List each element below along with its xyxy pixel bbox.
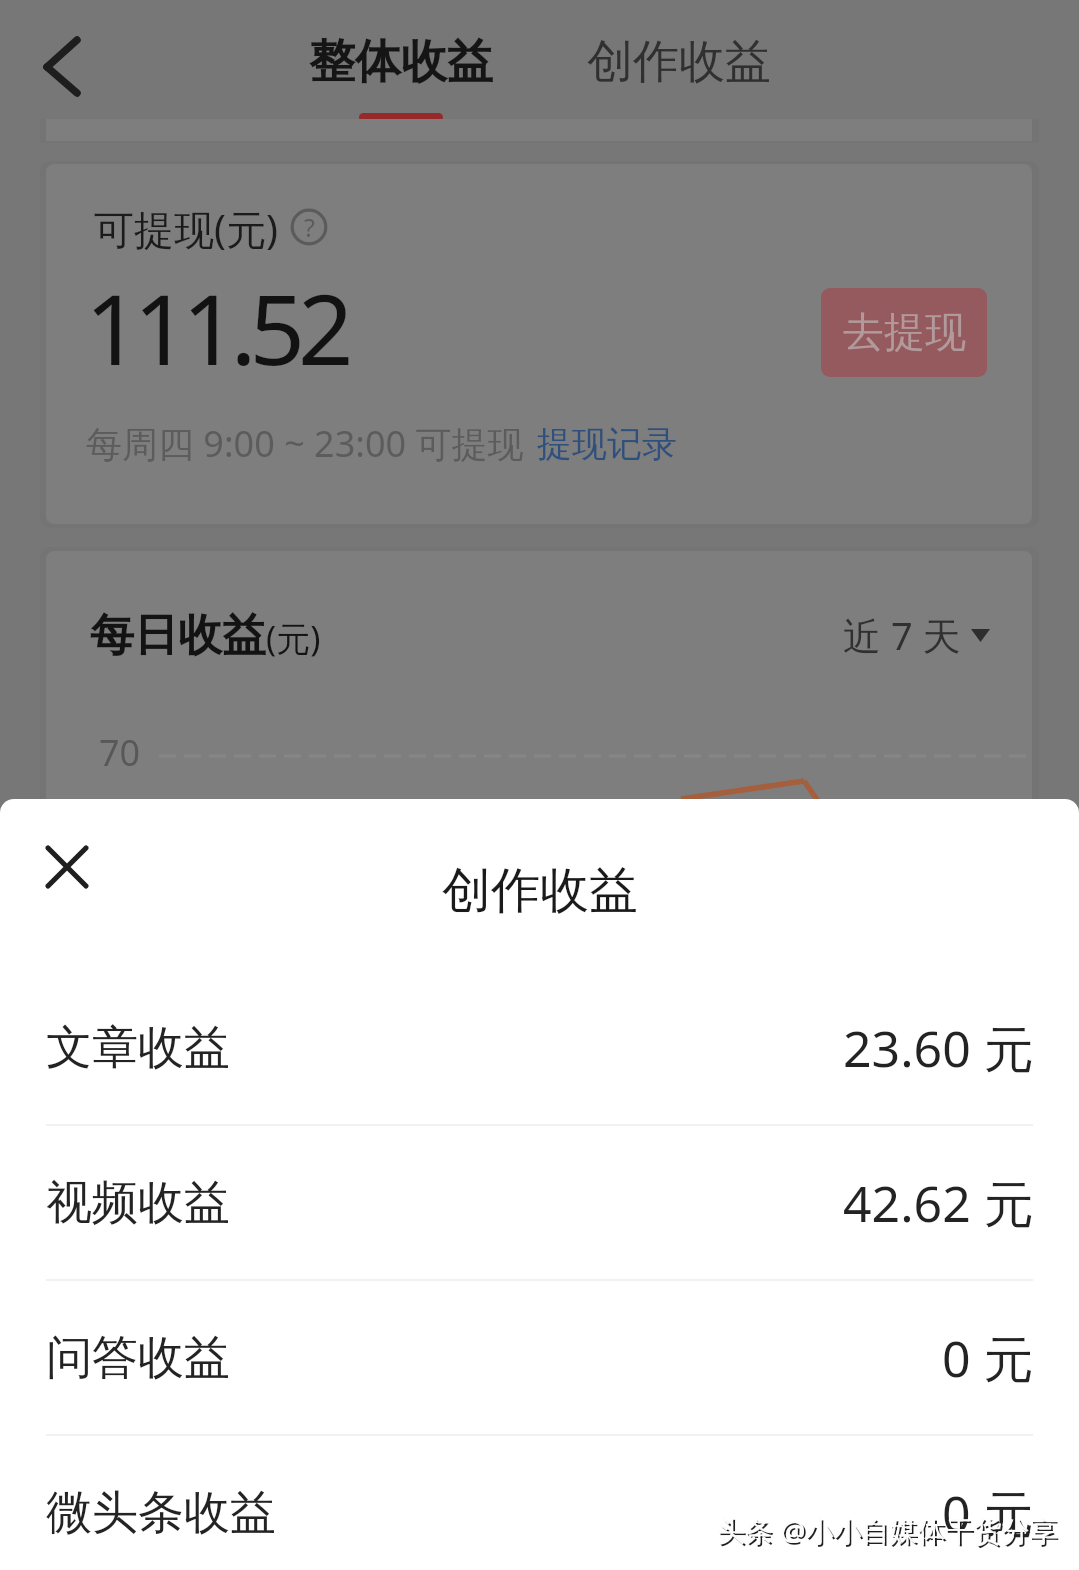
staticText: 0 元 bbox=[942, 1479, 1034, 1547]
staticText: 近 7 天 bbox=[843, 609, 961, 661]
button[interactable]: 文章收益 bbox=[0, 971, 1079, 1126]
button[interactable]: 去提现 bbox=[821, 288, 987, 377]
button[interactable]: Back bbox=[22, 27, 102, 107]
staticText: 创作收益 bbox=[442, 860, 638, 922]
staticText: 0 元 bbox=[942, 1324, 1034, 1392]
staticText: 去提现 bbox=[843, 307, 966, 359]
staticText: 70 bbox=[99, 728, 141, 777]
staticText: 头条 @小小自媒体干货分享 bbox=[717, 1511, 1058, 1549]
staticText: 头条 @小小自媒体干货分享 bbox=[719, 1513, 1060, 1551]
staticText: 可提现(元) bbox=[94, 201, 278, 256]
staticText: 创作收益 bbox=[587, 33, 771, 91]
staticText: 问答收益 bbox=[46, 1329, 230, 1387]
button[interactable]: 视频收益 bbox=[0, 1126, 1079, 1281]
staticText: 视频收益 bbox=[46, 1174, 230, 1232]
button[interactable]: 创作收益 bbox=[587, 33, 771, 91]
staticText: 微头条收益 bbox=[46, 1484, 276, 1542]
staticText: 整体收益 bbox=[309, 33, 493, 91]
staticText: 每日收益 bbox=[90, 608, 266, 663]
staticText: 文章收益 bbox=[46, 1019, 230, 1077]
button[interactable]: 整体收益 bbox=[309, 33, 493, 91]
staticText: (元) bbox=[266, 615, 321, 661]
staticText: 每周四 9:00 ~ 23:00 可提现 bbox=[86, 419, 524, 468]
staticText: ? bbox=[304, 210, 315, 244]
button[interactable]: 问答收益 bbox=[0, 1281, 1079, 1436]
staticText: 111.52 bbox=[85, 261, 347, 393]
staticText: 23.60 元 bbox=[843, 1014, 1034, 1082]
button[interactable]: Close bbox=[31, 831, 103, 903]
staticText: 42.62 元 bbox=[843, 1169, 1034, 1237]
button[interactable]: 微头条收益 bbox=[0, 1436, 1079, 1570]
staticText: 提现记录 bbox=[537, 422, 677, 466]
